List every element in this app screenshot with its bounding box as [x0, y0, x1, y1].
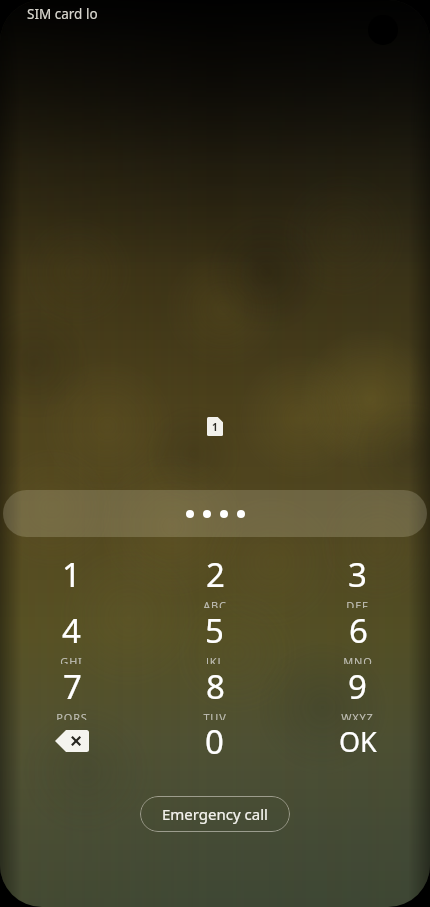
staticText: OK	[339, 723, 377, 760]
button[interactable]: OK	[286, 720, 429, 776]
button[interactable]: 8	[143, 664, 286, 720]
staticText: TUV	[203, 710, 227, 720]
staticText: GHI	[60, 654, 83, 664]
button[interactable]: 7	[0, 664, 143, 720]
button[interactable]: Backspace	[0, 720, 143, 776]
staticText: DEF	[346, 598, 369, 608]
staticText: ABC	[203, 598, 227, 608]
staticText: 1	[62, 552, 81, 597]
staticText: 7	[63, 664, 82, 709]
staticText: 4	[62, 608, 81, 653]
staticText: SIM card lo	[27, 5, 98, 23]
button[interactable]: Emergency call	[140, 796, 290, 832]
staticText: Emergency call	[162, 804, 268, 824]
staticText: 6	[349, 608, 368, 653]
button[interactable]: 6	[286, 608, 429, 664]
button[interactable]: 9	[286, 664, 429, 720]
staticText: 3	[348, 552, 367, 597]
button[interactable]: 4	[0, 608, 143, 664]
staticText: 2	[206, 552, 225, 597]
staticText: 0	[205, 719, 224, 764]
button[interactable]: 5	[143, 608, 286, 664]
button[interactable]	[3, 490, 427, 537]
staticText: WXYZ	[341, 710, 374, 720]
button[interactable]: 2	[143, 552, 286, 608]
staticText: PQRS	[56, 710, 88, 720]
staticText: 5	[205, 608, 224, 653]
staticText: MNO	[343, 654, 373, 664]
button[interactable]: 3	[286, 552, 429, 608]
staticText: 8	[206, 664, 225, 709]
staticText: 1	[212, 420, 218, 434]
staticText: 9	[348, 664, 367, 709]
button[interactable]: 1	[0, 552, 143, 608]
staticText: JKL	[206, 654, 224, 664]
button[interactable]: 0	[143, 720, 286, 776]
